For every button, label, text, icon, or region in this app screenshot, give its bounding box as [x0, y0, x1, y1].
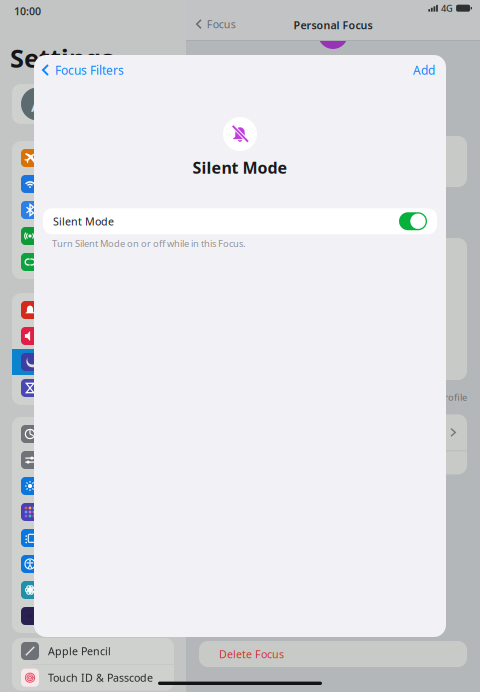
staticText: A — [31, 91, 44, 117]
staticText: Turn Silent Mode on or off while in this… — [52, 237, 246, 250]
staticText: Focus — [207, 17, 236, 31]
staticText: Add — [413, 62, 435, 78]
staticText: Settings — [10, 41, 114, 75]
button[interactable]: Silent Mode — [34, 208, 446, 234]
staticText: Apple Pencil — [48, 644, 111, 658]
button[interactable]: Delete Focus — [199, 639, 284, 669]
staticText: Share across devices and profile — [330, 391, 467, 403]
button[interactable]: Apple Pencil — [12, 638, 174, 664]
staticText: Focus Filters — [55, 62, 124, 78]
button[interactable]: Focus — [186, 0, 236, 31]
staticText: Silent Mode — [53, 214, 114, 228]
staticText: 4G — [441, 2, 453, 14]
staticText: Delete Focus — [219, 647, 284, 661]
staticText: Personal Focus — [293, 18, 372, 32]
staticText: 10:00 — [14, 4, 41, 18]
staticText: Silent Mode — [192, 157, 287, 178]
staticText: Touch ID & Passcode — [48, 671, 153, 685]
button[interactable]: Touch ID & Passcode — [12, 665, 174, 691]
button[interactable]: Focus Filters — [34, 55, 124, 85]
button[interactable]: Add — [413, 55, 446, 85]
